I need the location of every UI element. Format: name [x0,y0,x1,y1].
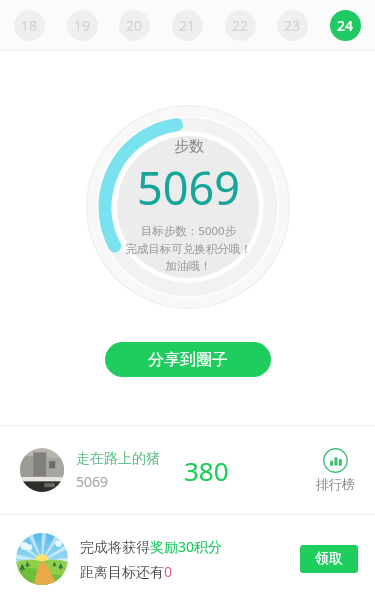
other: 排行榜 [323,448,348,473]
button[interactable]: 19 [67,10,98,41]
staticText: 5069 [137,157,240,218]
button[interactable]: 20 [119,10,150,41]
staticText: 20 [126,16,143,35]
button[interactable]: 24 [330,10,361,41]
staticText: 走在路上的猪 [76,450,160,468]
staticText: 分享到圈子 [148,350,228,370]
button[interactable]: 18 [14,10,45,41]
staticText: 排行榜 [316,476,355,492]
button[interactable]: 走在路上的猪 [0,426,375,514]
staticText: 19 [74,16,91,35]
button[interactable]: 22 [225,10,256,41]
button[interactable]: 分享到圈子 [105,342,271,377]
button[interactable]: 完成将获得奖励30积分 [0,515,375,603]
staticText: 23 [284,16,301,35]
staticText: 24 [337,16,354,35]
staticText: 5069 [76,472,109,491]
button[interactable]: 领取 [300,545,358,573]
staticText: 领取 [315,550,343,568]
staticText: 完成将获得奖励30积分 [80,537,223,556]
staticText: 步数 [174,137,204,156]
staticText: 距离目标还有0 [80,562,173,581]
button[interactable]: 23 [277,10,308,41]
staticText: 22 [232,16,249,35]
staticText: 18 [21,16,38,35]
staticText: 目标步数：5000步 完成目标可兑换积分哦！ 加油哦！ [125,223,252,273]
staticText: 21 [179,16,196,35]
staticText: 380 [184,453,229,488]
button[interactable]: 21 [172,10,203,41]
button[interactable]: 排行榜 [312,444,359,496]
